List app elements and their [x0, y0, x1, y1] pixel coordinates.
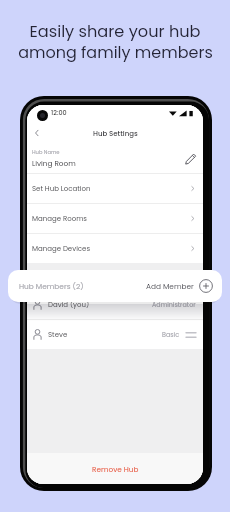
staticText: David (you) [48, 300, 90, 310]
staticText: Easily share your hub [29, 20, 201, 43]
staticText: Remove Hub [92, 464, 139, 474]
button[interactable]: Remove Hub [27, 453, 203, 484]
button[interactable]: Hub Members (2) [8, 270, 222, 302]
button[interactable]: Edit hub name [184, 152, 197, 165]
staticText: Living Room [32, 158, 76, 168]
staticText: among family members [18, 41, 213, 63]
staticText: Basic [162, 330, 180, 339]
staticText: Hub Name [32, 149, 60, 156]
button[interactable]: Hub Name [27, 143, 203, 173]
staticText: Manage Rooms [32, 214, 87, 224]
staticText: Hub Members (2) [19, 281, 84, 291]
button[interactable]: Add Member [199, 279, 213, 293]
button[interactable]: David (you) [27, 290, 203, 319]
staticText: Steve [48, 330, 68, 340]
staticText: Administrator [152, 300, 196, 309]
staticText: Hub Settings [93, 129, 138, 139]
staticText: Set Hub Location [32, 184, 91, 194]
button[interactable]: Reorder member [186, 330, 196, 340]
staticText: 12:00 [51, 108, 67, 117]
staticText: Manage Devices [32, 244, 91, 254]
button[interactable]: Back [30, 126, 44, 140]
button[interactable]: Manage Rooms [27, 204, 203, 233]
button[interactable]: Manage Devices [27, 234, 203, 263]
button[interactable]: Set Hub Location [27, 174, 203, 203]
button[interactable]: Steve [27, 320, 203, 349]
staticText: Add Member [146, 281, 194, 291]
